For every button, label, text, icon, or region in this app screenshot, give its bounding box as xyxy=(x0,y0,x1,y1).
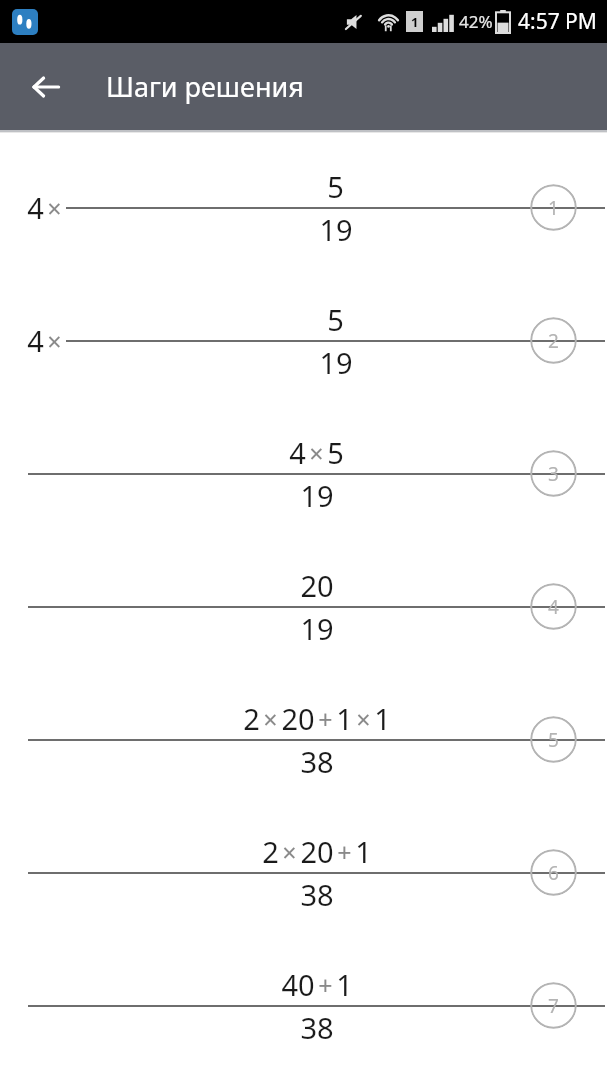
staticText: × xyxy=(47,324,62,358)
button[interactable]: Step 4 xyxy=(530,583,577,630)
staticText: 20 xyxy=(281,699,315,738)
staticText: 20 xyxy=(300,566,334,605)
staticText: + xyxy=(318,702,333,736)
staticText: × xyxy=(282,835,297,869)
button[interactable]: Step 2 xyxy=(530,317,577,364)
staticText: 2 xyxy=(262,832,279,871)
staticText: 42% xyxy=(459,10,493,33)
staticText: 19 xyxy=(319,210,353,249)
staticText: 5 xyxy=(548,727,559,753)
button[interactable]: Step 5 xyxy=(530,716,577,763)
staticText: 38 xyxy=(300,742,334,781)
staticText: 1 xyxy=(336,965,353,1004)
staticText: 19 xyxy=(300,609,334,648)
staticText: + xyxy=(318,968,333,1002)
staticText: 19 xyxy=(300,476,334,515)
button[interactable]: Back xyxy=(20,61,72,113)
staticText: 5 xyxy=(327,300,344,339)
staticText: 40 xyxy=(281,965,315,1004)
button[interactable]: 2 xyxy=(0,673,607,806)
staticText: 3 xyxy=(548,461,559,487)
button[interactable]: Step 7 xyxy=(530,982,577,1029)
staticText: 1 xyxy=(548,195,559,221)
button[interactable]: 4 xyxy=(0,274,607,407)
button[interactable]: 40 xyxy=(0,939,607,1072)
staticText: 4 xyxy=(548,594,559,620)
button[interactable]: 2 xyxy=(0,806,607,939)
button[interactable]: 20 xyxy=(0,540,607,673)
staticText: 4 xyxy=(27,321,44,360)
staticText: 7 xyxy=(548,993,559,1019)
staticText: 2 xyxy=(548,328,559,354)
staticText: 1 xyxy=(355,832,372,871)
staticText: × xyxy=(47,191,62,225)
staticText: 2 xyxy=(243,699,260,738)
staticText: 6 xyxy=(548,860,559,886)
staticText: 20 xyxy=(300,832,334,871)
staticText: Шаги решения xyxy=(106,68,304,105)
staticText: 38 xyxy=(300,1008,334,1047)
staticText: 19 xyxy=(319,343,353,382)
staticText: 4 xyxy=(289,433,306,472)
staticText: × xyxy=(309,436,324,470)
staticText: × xyxy=(263,702,278,736)
staticText: 1 xyxy=(374,699,391,738)
staticText: 4:57 PM xyxy=(518,7,597,36)
button[interactable]: Step 6 xyxy=(530,849,577,896)
staticText: × xyxy=(356,702,371,736)
button[interactable]: Step 3 xyxy=(530,450,577,497)
staticText: 1 xyxy=(336,699,353,738)
button[interactable]: Step 1 xyxy=(530,184,577,231)
button[interactable]: 4 xyxy=(0,141,607,274)
staticText: 38 xyxy=(300,875,334,914)
staticText: + xyxy=(337,835,352,869)
staticText: 4 xyxy=(27,188,44,227)
staticText: 5 xyxy=(327,167,344,206)
staticText: 1 xyxy=(411,13,419,31)
staticText: 5 xyxy=(327,433,344,472)
button[interactable]: 4 xyxy=(0,407,607,540)
